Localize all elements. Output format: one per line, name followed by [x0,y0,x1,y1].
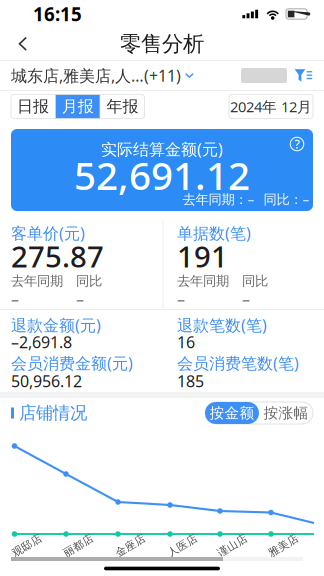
staticText: 16:15 [33,2,82,26]
button[interactable]: 年报 [101,94,145,118]
staticText: –2,691.8 [11,331,72,353]
staticText: 人医店 [166,539,199,552]
button[interactable]: 2024年 12月 [229,94,313,118]
staticText: ? [294,136,299,152]
staticText: 退款笔数(笔) [177,314,267,336]
staticText: 去年同期：– 同比：– [182,190,309,208]
button[interactable]: Back [9,29,37,58]
staticText: 16 [177,331,195,353]
staticText: – [76,288,84,310]
staticText: 日报 [17,97,49,116]
staticText: 退款金额(元) [11,314,101,336]
staticText: 按金额 [209,404,254,422]
staticText: 同比 [76,273,102,289]
staticText: 去年同期 [177,273,229,289]
staticText: 城东店,雅美店,人…(+11) [11,65,181,86]
staticText: 275.87 [11,236,104,275]
staticText: 零售分析 [120,31,204,57]
staticText: 客单价(元) [11,222,85,244]
staticText: – [242,288,250,310]
staticText: 185 [177,370,204,392]
staticText: – [11,288,19,310]
button[interactable]: 按涨幅 [259,402,313,424]
staticText: 按涨幅 [263,404,308,422]
button[interactable]: Help [289,136,304,151]
button[interactable]: Filter [294,68,313,83]
staticText: 年报 [107,97,139,116]
button[interactable]: 月报 [56,94,100,118]
staticText: 店铺情况 [19,402,87,424]
button[interactable]: 按金额 [205,402,259,424]
staticText: 同比 [242,273,268,289]
staticText: 2024年 12月 [230,97,312,116]
staticText: 50,956.12 [11,370,82,392]
staticText: 谨山店 [216,539,249,552]
staticText: 金座店 [114,539,147,552]
button[interactable]: 城东店,雅美店,人…(+11) [11,65,194,86]
staticText: 丽都店 [62,539,95,552]
staticText: 会员消费笔数(笔) [177,352,299,374]
staticText: 雅美店 [267,539,300,552]
staticText: – [177,288,185,310]
staticText: 52,691.12 [74,149,250,201]
staticText: 观邸店 [10,539,43,552]
staticText: 191 [177,236,228,275]
staticText: 月报 [62,97,94,116]
button[interactable]: 日报 [11,94,55,118]
staticText: 去年同期 [11,273,63,289]
staticText: 单据数(笔) [177,222,251,244]
staticText: 会员消费金额(元) [11,352,133,374]
staticText: 实际结算金额(元) [101,138,223,160]
